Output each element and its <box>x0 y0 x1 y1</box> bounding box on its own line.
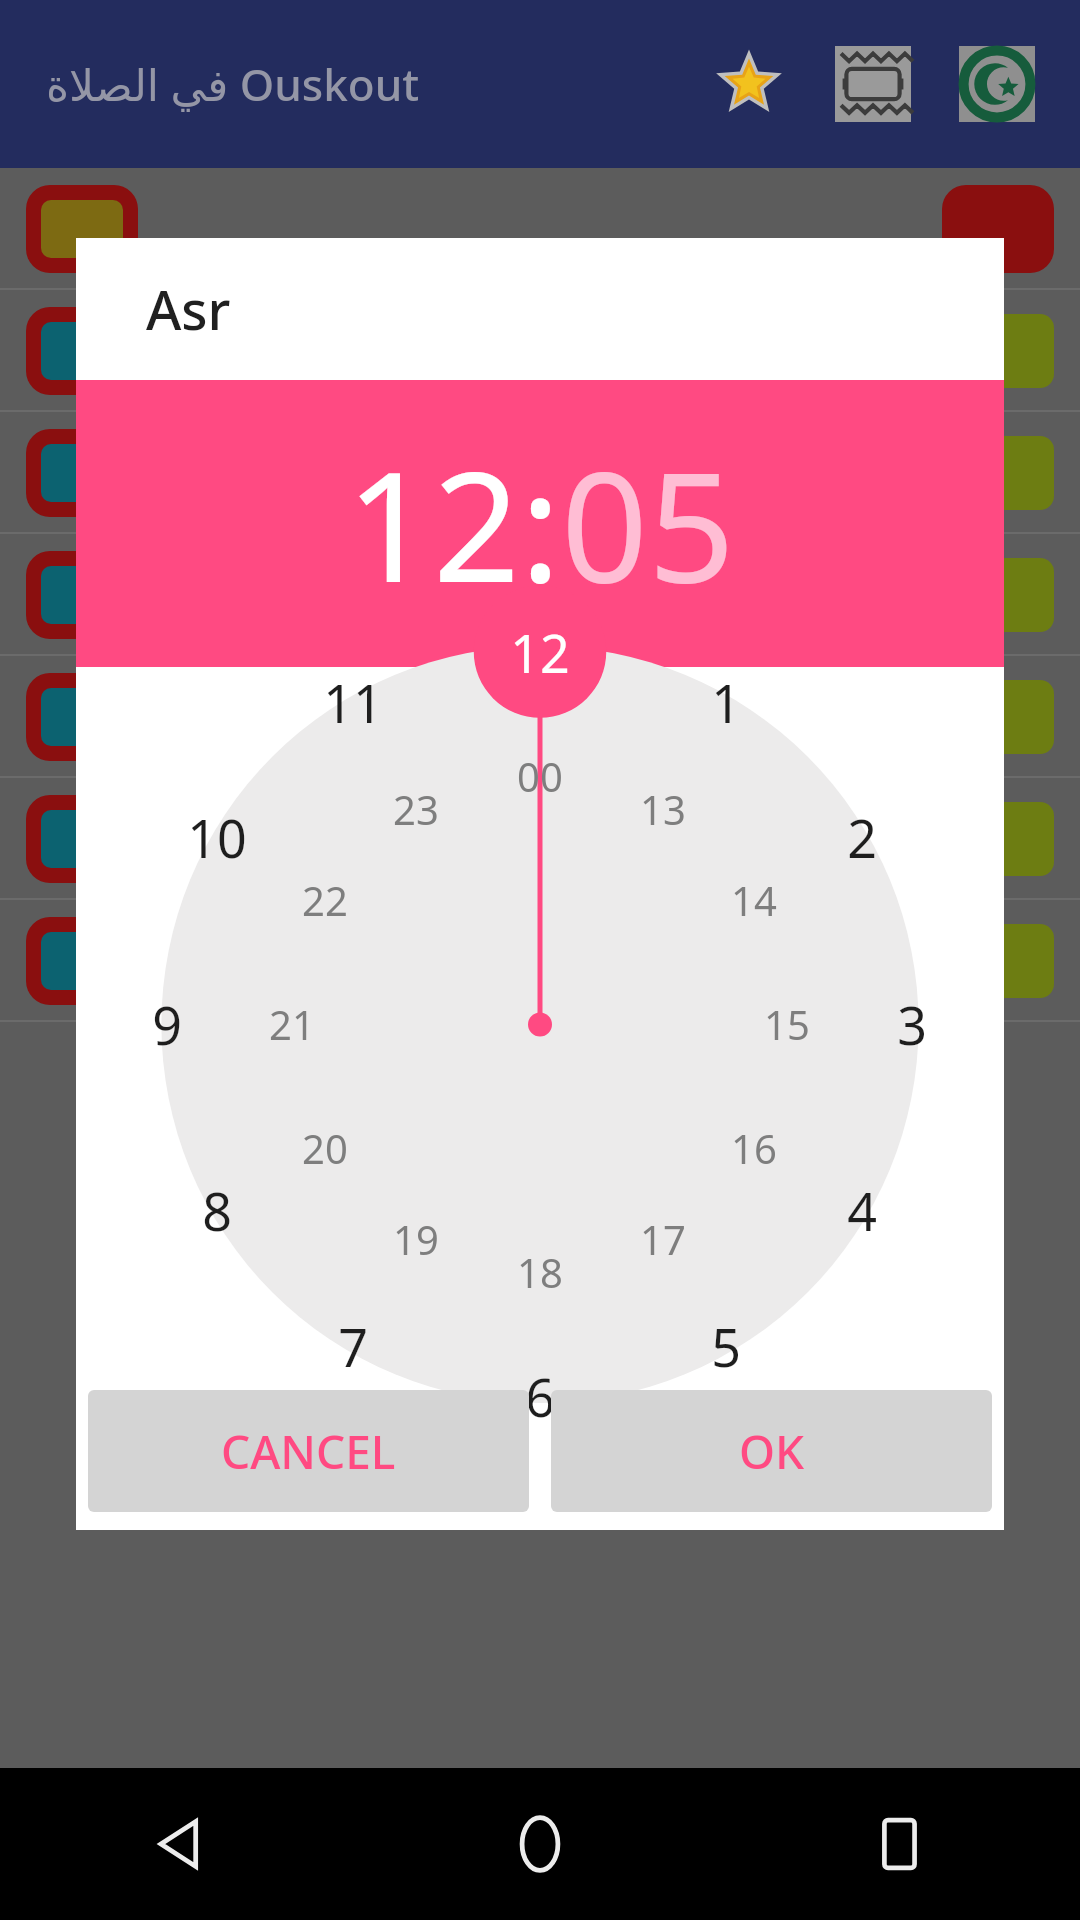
staticText: 12 <box>510 617 570 688</box>
staticText: 05 <box>561 420 735 627</box>
staticText: 00 <box>517 749 563 803</box>
button[interactable] <box>0 900 1080 1022</box>
staticText: 3 <box>897 989 927 1060</box>
staticText: 17 <box>640 1212 686 1266</box>
staticText: 18 <box>517 1245 563 1299</box>
button[interactable]: CANCEL <box>88 1390 529 1512</box>
staticText: 13 <box>640 782 686 836</box>
staticText: 14 <box>731 873 777 927</box>
button[interactable]: Home <box>360 1768 720 1920</box>
button[interactable]: OK <box>551 1390 992 1512</box>
button[interactable]: Vibrate <box>818 29 928 139</box>
staticText: 10 <box>187 802 247 873</box>
staticText: 19 <box>393 1212 439 1266</box>
staticText: : <box>520 420 561 627</box>
staticText: 22 <box>302 873 348 927</box>
staticText: CANCEL <box>221 1420 396 1483</box>
staticText: 15 <box>764 997 810 1051</box>
staticText: OK <box>739 1420 805 1483</box>
button[interactable] <box>0 168 1080 290</box>
button[interactable] <box>0 778 1080 900</box>
staticText: 12 <box>346 420 520 627</box>
staticText: 7 <box>338 1311 368 1382</box>
staticText: 21 <box>269 997 315 1051</box>
staticText: 1 <box>711 667 741 738</box>
staticText: 23 <box>393 782 439 836</box>
button[interactable] <box>0 412 1080 534</box>
staticText: 5 <box>711 1311 741 1382</box>
staticText: في الصلاة Ouskout <box>46 54 420 114</box>
staticText: 8 <box>202 1175 232 1246</box>
staticText: 2 <box>847 802 877 873</box>
staticText: 6 <box>525 1361 555 1432</box>
button[interactable] <box>0 656 1080 778</box>
staticText: Asr <box>146 272 231 346</box>
button[interactable]: Favourite <box>694 29 804 139</box>
staticText: 9 <box>152 989 182 1060</box>
staticText: 4 <box>847 1175 877 1246</box>
button[interactable]: Back <box>0 1768 360 1920</box>
staticText: 20 <box>302 1121 348 1175</box>
button[interactable] <box>0 534 1080 656</box>
staticText: 16 <box>731 1121 777 1175</box>
button[interactable] <box>0 290 1080 412</box>
button[interactable]: Qibla <box>942 29 1052 139</box>
staticText: 11 <box>323 667 383 738</box>
button[interactable]: Recents <box>720 1768 1080 1920</box>
